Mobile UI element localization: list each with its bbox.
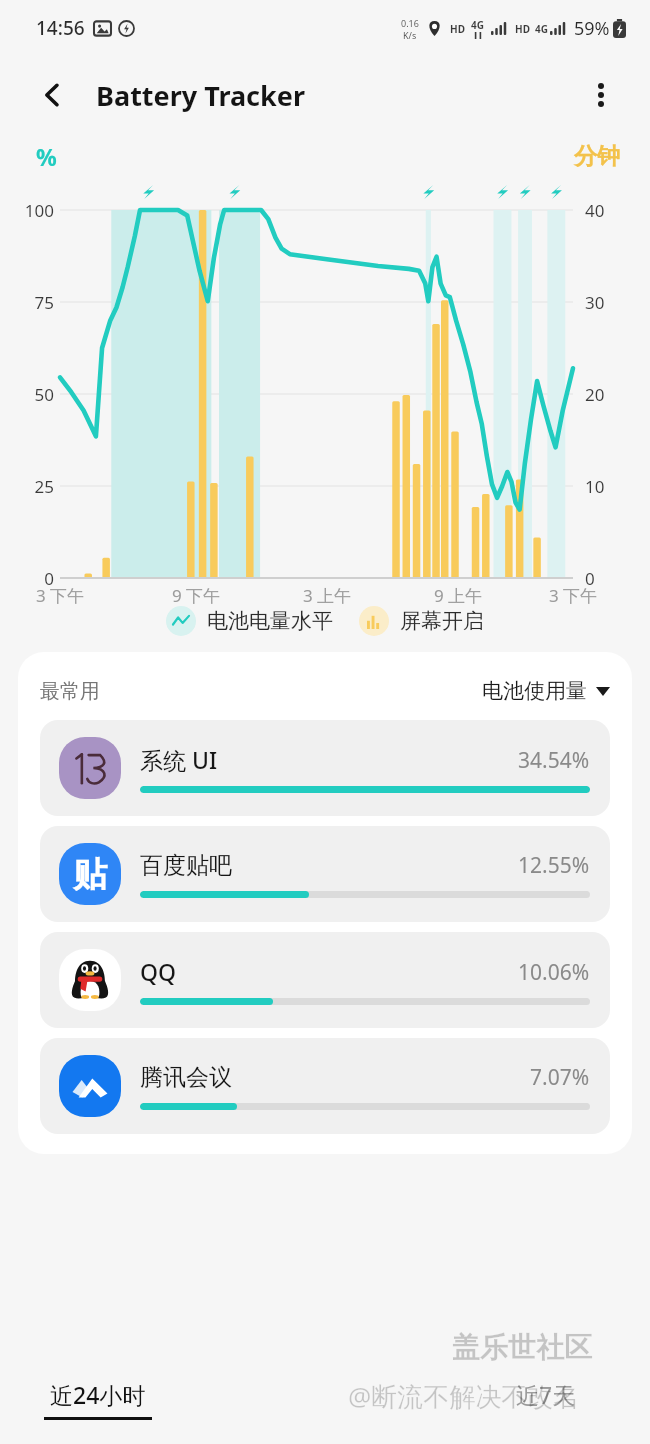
button[interactable]: 近24小时	[44, 1379, 152, 1420]
staticText: 0.16	[401, 17, 419, 29]
button[interactable]: 电池电量水平	[166, 606, 333, 636]
staticText: @断流不解决不改名	[348, 1378, 580, 1414]
staticText: 25	[20, 475, 54, 498]
staticText: 3 下午	[535, 584, 611, 607]
staticText: 系统 UI	[140, 744, 218, 775]
staticText: 近7天	[516, 1379, 576, 1410]
staticText: 10.06%	[518, 958, 590, 987]
staticText: 30	[585, 291, 625, 314]
staticText: 腾讯会议	[140, 1063, 232, 1092]
staticText: 屏幕开启	[400, 608, 484, 634]
button[interactable]: 贴	[40, 826, 610, 922]
staticText: 分钟	[574, 142, 620, 171]
button[interactable]: More options	[578, 72, 624, 118]
staticText: 100	[20, 199, 54, 222]
button[interactable]: 近7天	[516, 1379, 576, 1420]
staticText: Battery Tracker	[96, 77, 305, 114]
staticText: 近24小时	[50, 1379, 146, 1410]
staticText: 4G	[471, 18, 484, 32]
staticText: 3 下午	[22, 584, 98, 607]
staticText: 最常用	[40, 679, 100, 704]
staticText: 20	[585, 383, 625, 406]
staticText: 75	[20, 291, 54, 314]
staticText: 40	[585, 199, 625, 222]
staticText: 百度贴吧	[140, 851, 232, 880]
staticText: 电池电量水平	[207, 608, 333, 634]
staticText: 12.55%	[518, 851, 590, 880]
staticText: 0	[585, 567, 625, 590]
staticText: 9 下午	[158, 584, 234, 607]
staticText: 14:56	[36, 15, 85, 41]
staticText: 7.07%	[530, 1063, 590, 1092]
button[interactable]: Back	[30, 72, 76, 118]
staticText: HD	[515, 22, 530, 36]
staticText: 贴	[73, 853, 107, 896]
staticText: 3 上午	[289, 584, 365, 607]
staticText: 4G	[535, 22, 548, 36]
staticText: 0	[20, 567, 54, 590]
staticText: HD	[450, 22, 465, 36]
button[interactable]: QQ	[40, 932, 610, 1028]
staticText: 10	[585, 475, 625, 498]
staticText: QQ	[140, 956, 177, 987]
button[interactable]: 电池使用量	[482, 678, 610, 704]
staticText: 34.54%	[518, 746, 590, 775]
staticText: 59%	[574, 16, 610, 41]
staticText: %	[36, 141, 57, 172]
staticText: 50	[20, 383, 54, 406]
button[interactable]: 系统 UI	[40, 720, 610, 816]
staticText: K/s	[403, 29, 417, 41]
staticText: 电池使用量	[482, 678, 587, 704]
button[interactable]: 屏幕开启	[359, 606, 484, 636]
button[interactable]: 腾讯会议	[40, 1038, 610, 1134]
staticText: 盖乐世社区	[452, 1330, 592, 1365]
staticText: 9 上午	[420, 584, 496, 607]
